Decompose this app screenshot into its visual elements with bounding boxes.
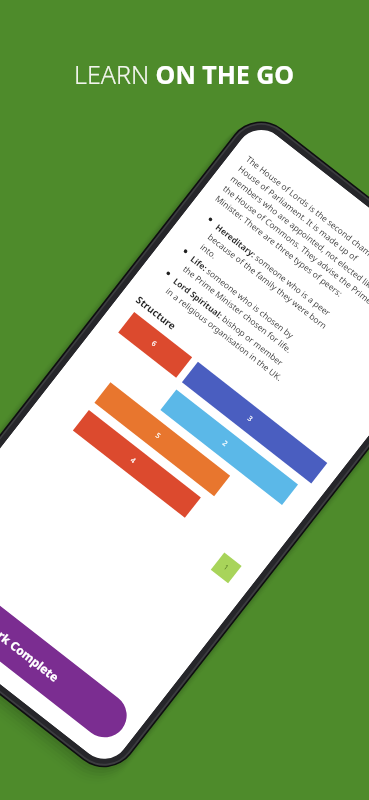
button[interactable]: Learn on the go promo <box>0 0 369 800</box>
